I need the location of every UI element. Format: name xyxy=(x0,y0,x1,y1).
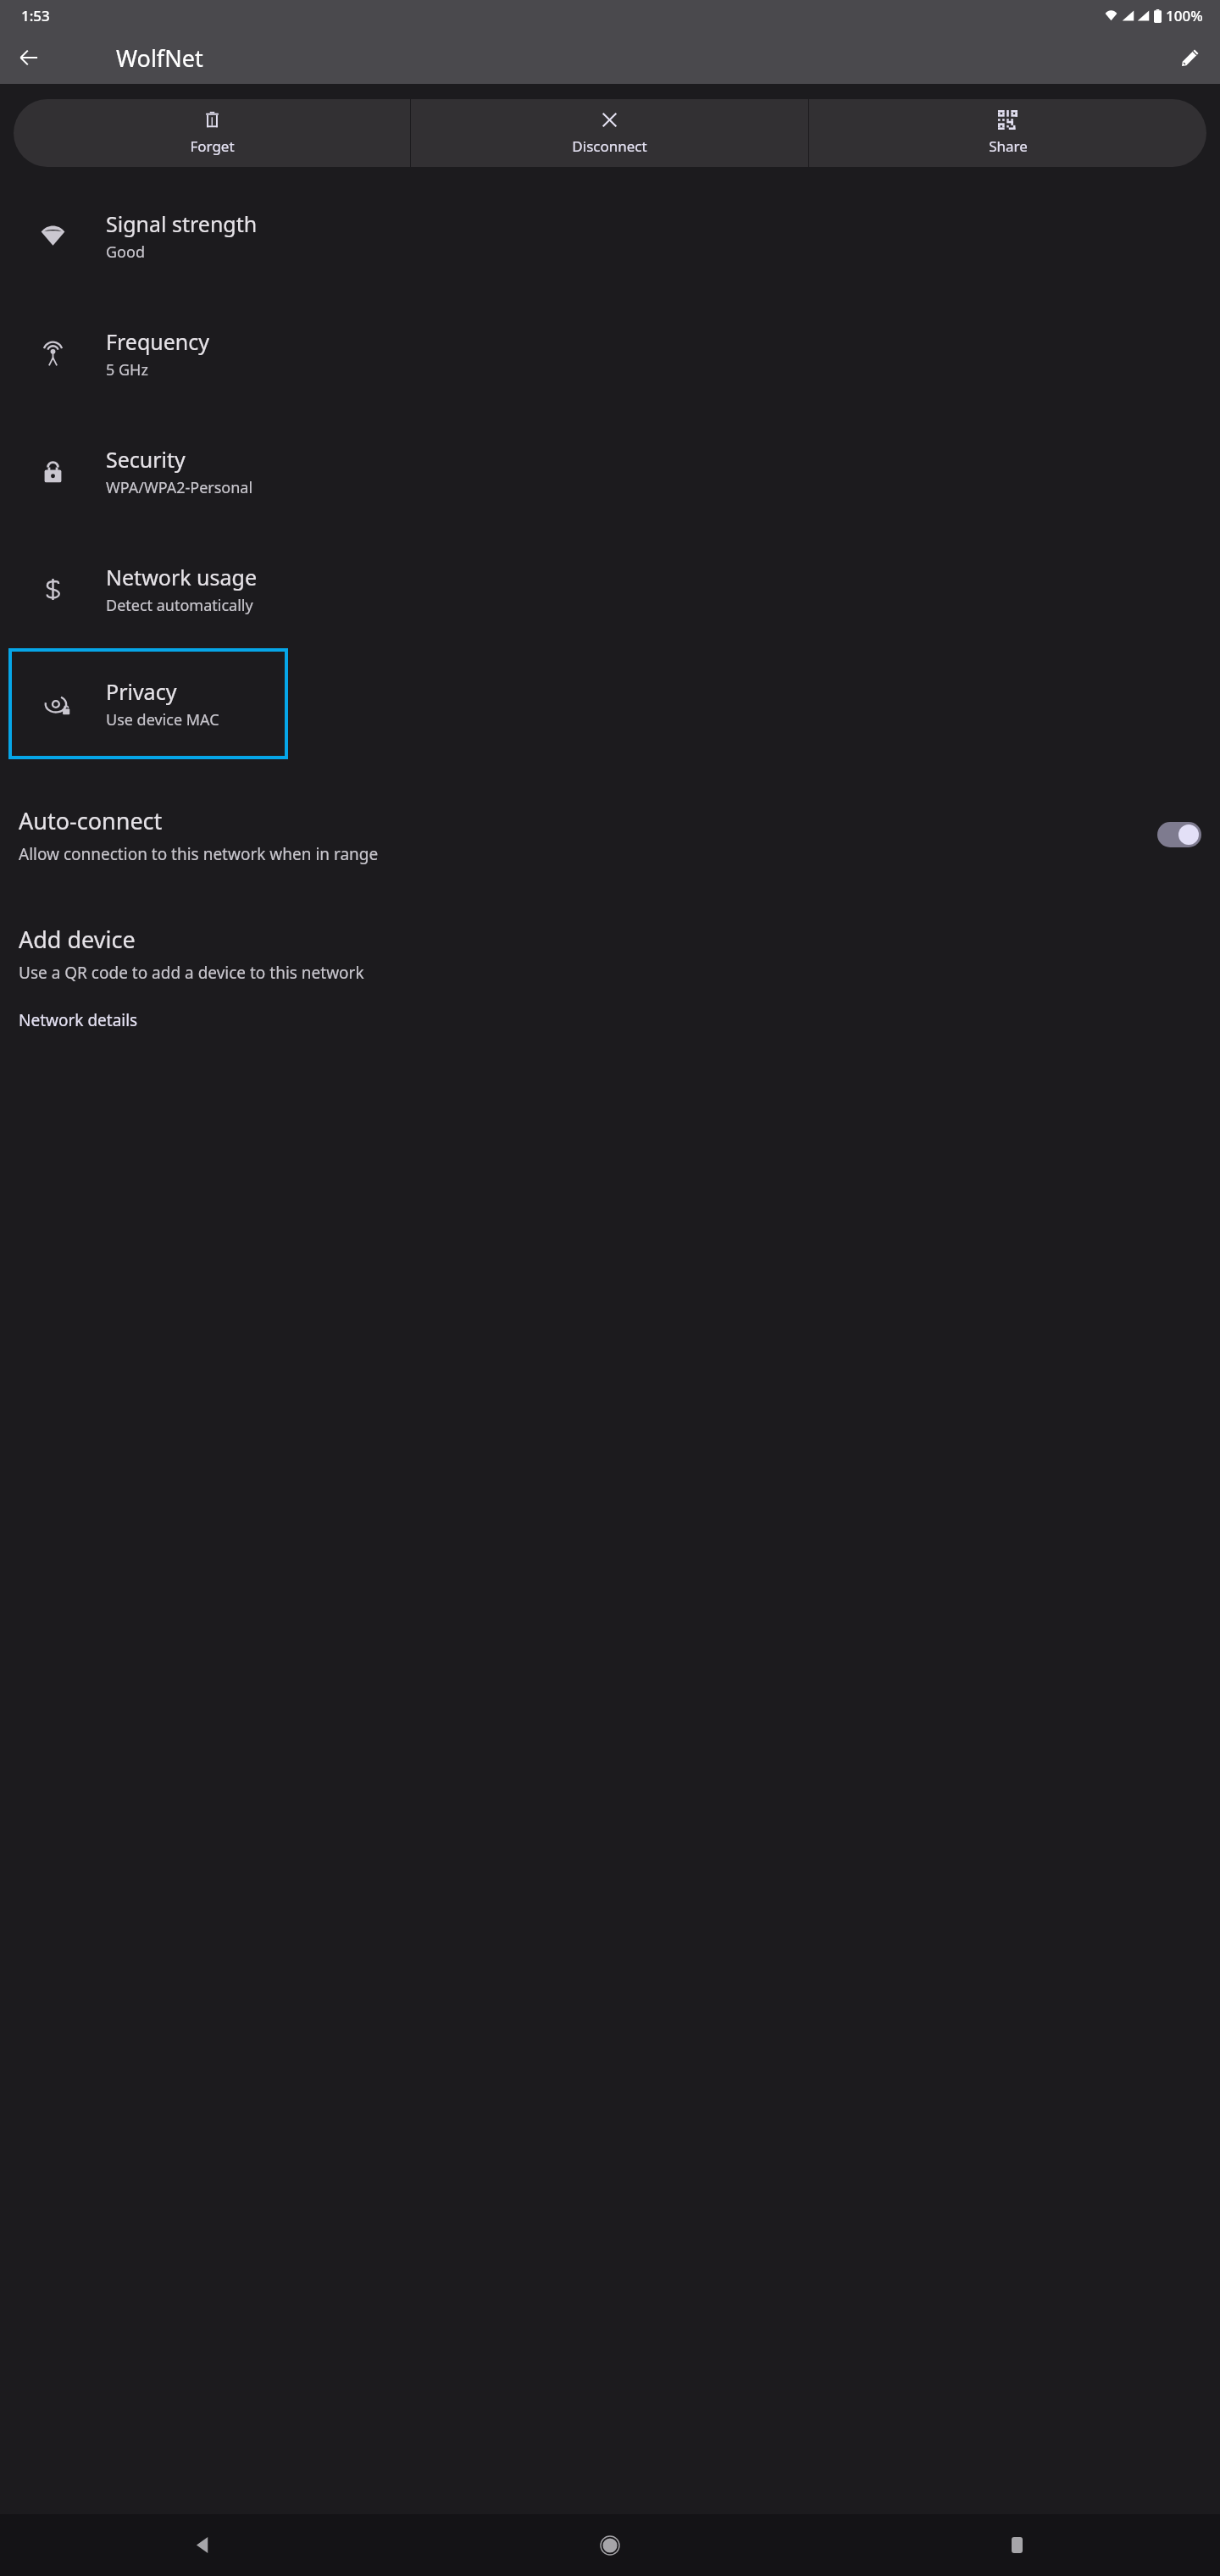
staticText: WPA/WPA2-Personal xyxy=(106,477,253,498)
button[interactable]: Privacy xyxy=(12,652,285,756)
staticText: Detect automatically xyxy=(106,595,253,616)
button[interactable]: Network usage xyxy=(0,530,1220,648)
button[interactable]: Frequency xyxy=(0,295,1220,413)
button[interactable]: Auto-connect xyxy=(19,759,1201,910)
staticText: 100% xyxy=(1166,6,1203,25)
button[interactable]: Forget xyxy=(14,99,410,167)
staticText: Add device xyxy=(19,924,136,955)
staticText: Disconnect xyxy=(572,136,647,156)
staticText: Allow connection to this network when in… xyxy=(19,843,408,865)
button[interactable]: Add device xyxy=(19,924,1201,984)
staticText: Network details xyxy=(19,1009,138,1031)
staticText: Auto-connect xyxy=(19,805,163,836)
staticText: Signal strength xyxy=(106,209,258,238)
staticText: WolfNet xyxy=(116,42,203,74)
staticText: 5 GHz xyxy=(106,359,148,380)
button[interactable]: Security xyxy=(0,413,1220,530)
staticText: 1:53 xyxy=(21,6,50,25)
staticText: Use a QR code to add a device to this ne… xyxy=(19,962,364,984)
staticText: Frequency xyxy=(106,327,210,356)
button[interactable]: Back xyxy=(0,2514,407,2576)
button[interactable]: Edit xyxy=(1167,36,1212,80)
button[interactable]: Share xyxy=(809,99,1206,167)
staticText: Privacy xyxy=(106,677,177,706)
button[interactable]: Recent apps xyxy=(813,2514,1220,2576)
staticText: Forget xyxy=(190,136,235,156)
button[interactable]: Signal strength xyxy=(0,177,1220,295)
button[interactable]: Home xyxy=(407,2514,813,2576)
staticText: Security xyxy=(106,445,186,474)
button[interactable] xyxy=(1157,822,1201,847)
staticText: Share xyxy=(989,136,1028,156)
staticText: Good xyxy=(106,241,145,263)
staticText: Use device MAC xyxy=(106,709,219,730)
button[interactable]: Back xyxy=(7,36,51,80)
button[interactable]: Disconnect xyxy=(411,99,808,167)
staticText: Network usage xyxy=(106,563,258,591)
